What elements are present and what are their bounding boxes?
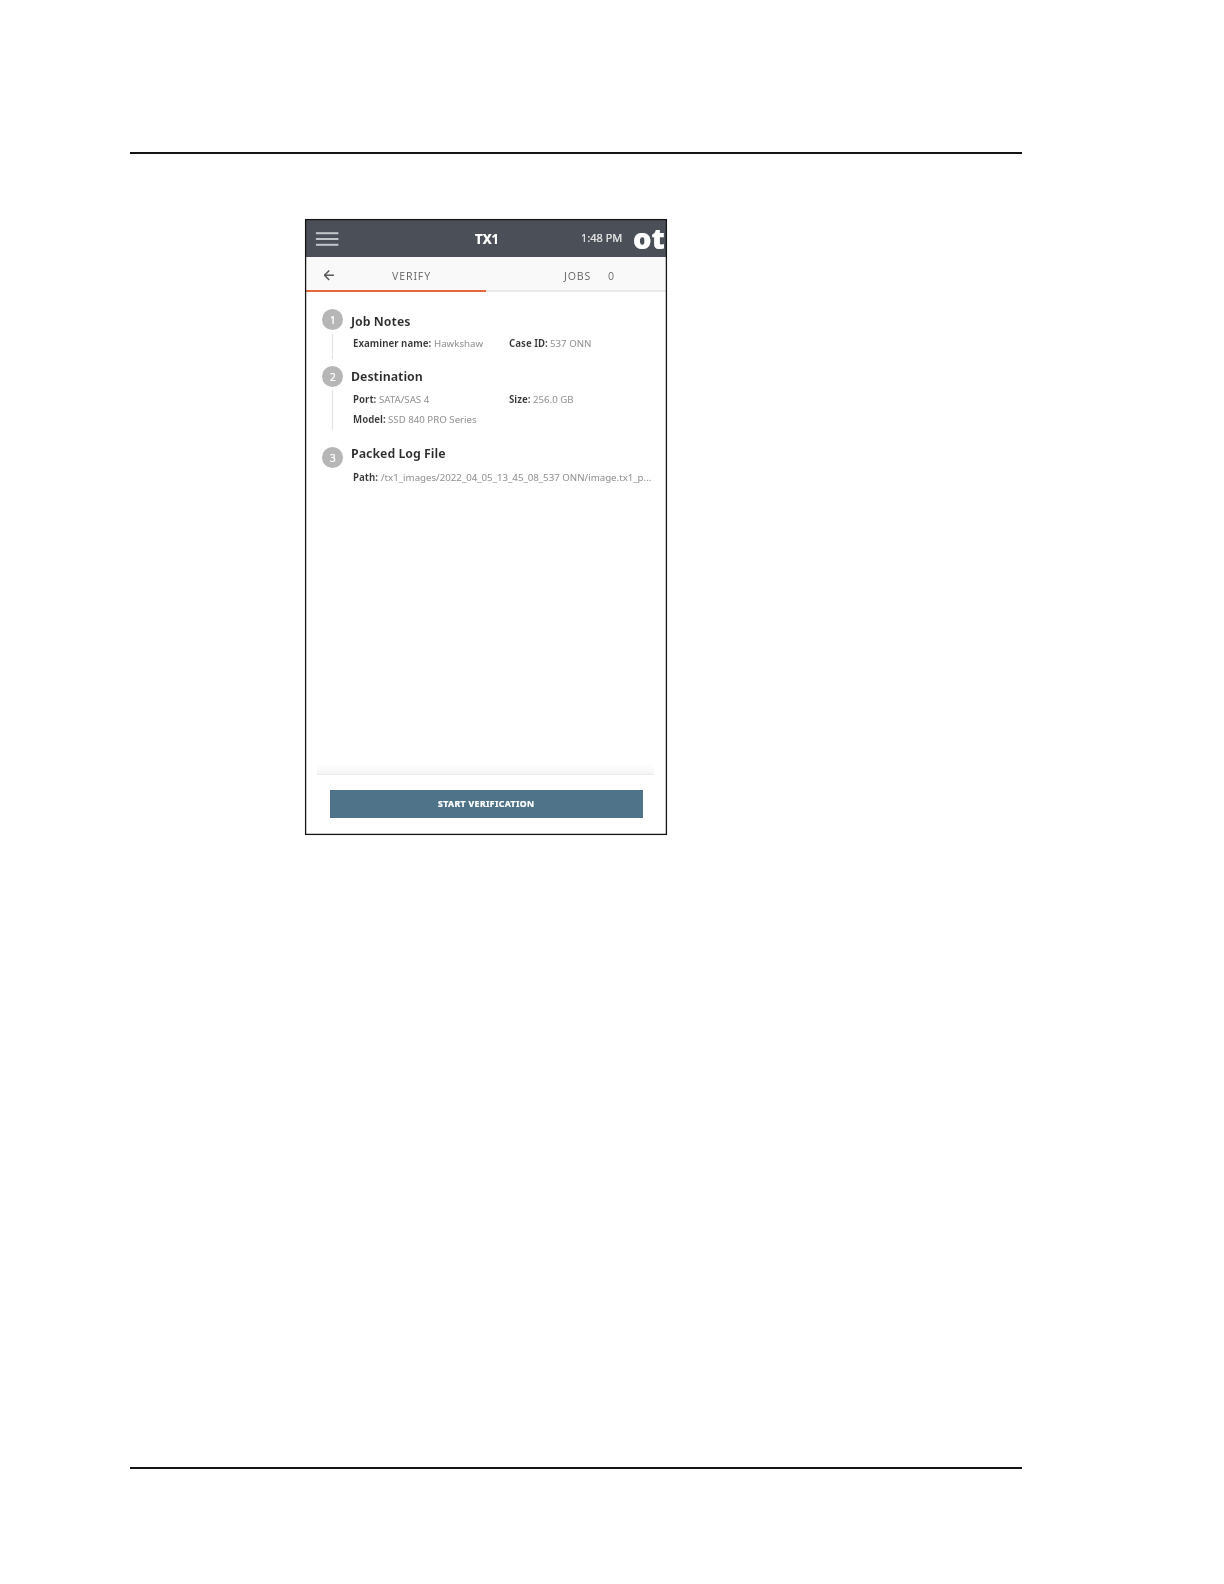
staticText: SATA/SAS 4 xyxy=(379,393,430,406)
staticText: 3 xyxy=(330,451,336,465)
staticText: 537 ONN xyxy=(550,337,592,350)
staticText: Path: xyxy=(353,471,379,484)
staticText: 2 xyxy=(330,370,336,384)
staticText: /tx1_images/2022_04_05_13_45_08_537 ONN/… xyxy=(381,471,652,484)
staticText: JOBS xyxy=(564,269,592,283)
staticText: Job Notes xyxy=(351,313,411,330)
staticText: Port: xyxy=(353,393,377,406)
button[interactable]: JOBS xyxy=(531,259,651,292)
button[interactable]: VERIFY xyxy=(352,259,472,292)
staticText: VERIFY xyxy=(392,269,432,283)
staticText: Size: xyxy=(509,393,531,406)
staticText: 256.0 GB xyxy=(533,393,574,406)
staticText: Hawkshaw xyxy=(434,337,484,350)
staticText: SSD 840 PRO Series xyxy=(388,413,477,426)
staticText: Model: xyxy=(353,413,386,426)
staticText: Examiner name: xyxy=(353,337,432,350)
staticText: Destination xyxy=(351,368,423,385)
button[interactable]: START VERIFICATION xyxy=(330,790,643,818)
staticText: 1:48 PM xyxy=(581,230,623,245)
staticText: START VERIFICATION xyxy=(438,798,535,810)
button[interactable]: Menu xyxy=(312,226,342,250)
staticText: Case ID: xyxy=(509,337,548,350)
button[interactable]: Back xyxy=(313,262,337,286)
staticText: 0 xyxy=(608,269,615,283)
staticText: TX1 xyxy=(475,230,500,248)
staticText: ot xyxy=(633,218,665,256)
staticText: 1 xyxy=(330,313,336,327)
staticText: Packed Log File xyxy=(351,445,446,462)
